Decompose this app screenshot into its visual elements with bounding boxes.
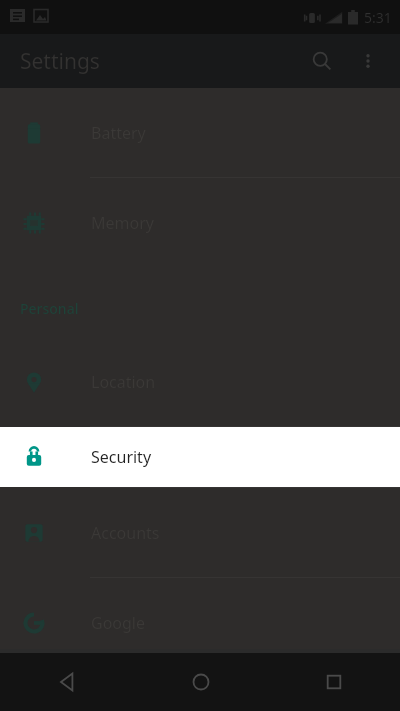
staticText: Accounts bbox=[91, 522, 160, 544]
button[interactable]: Back bbox=[0, 653, 134, 711]
staticText: Memory bbox=[91, 212, 154, 234]
button[interactable]: Home bbox=[134, 653, 267, 711]
staticText: Security bbox=[91, 446, 152, 468]
button[interactable]: Search bbox=[298, 37, 346, 85]
staticText: Location bbox=[91, 371, 156, 393]
staticText: Battery bbox=[91, 122, 146, 144]
button[interactable]: More options bbox=[346, 39, 390, 83]
staticText: Settings bbox=[20, 47, 100, 76]
staticText: Google bbox=[91, 612, 146, 634]
button[interactable]: Google bbox=[0, 578, 400, 667]
staticText: Personal bbox=[20, 299, 79, 318]
staticText: 5:31 bbox=[364, 8, 392, 27]
button[interactable]: Security bbox=[0, 427, 400, 487]
button[interactable]: Recent apps bbox=[267, 653, 400, 711]
